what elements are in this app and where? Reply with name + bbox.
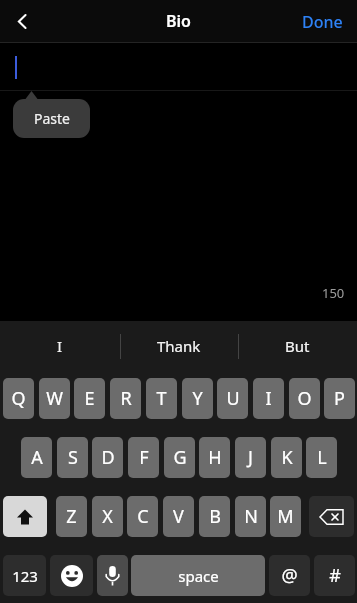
button[interactable]: Done <box>293 5 351 38</box>
button[interactable]: T <box>146 378 177 419</box>
staticText: P <box>334 386 345 411</box>
staticText: Y <box>192 386 203 411</box>
button[interactable]: V <box>163 496 194 537</box>
staticText: B <box>209 504 221 529</box>
staticText: But <box>285 336 310 356</box>
staticText: # <box>329 563 341 588</box>
button[interactable]: C <box>127 496 158 537</box>
staticText: O <box>297 386 312 411</box>
button[interactable]: B <box>199 496 230 537</box>
staticText: M <box>277 504 294 529</box>
staticText: Bio <box>166 10 191 32</box>
button[interactable]: A <box>21 437 52 478</box>
staticText: A <box>31 445 43 470</box>
button[interactable]: S <box>57 437 88 478</box>
button[interactable]: Paste <box>13 99 90 138</box>
staticText: R <box>120 386 132 411</box>
staticText: X <box>102 504 113 529</box>
button[interactable]: I <box>0 321 120 371</box>
button[interactable]: Backspace <box>309 496 354 537</box>
button[interactable]: P <box>324 378 355 419</box>
button[interactable]: K <box>271 437 302 478</box>
staticText: Done <box>302 11 343 33</box>
staticText: Q <box>11 386 26 411</box>
staticText: T <box>156 386 167 411</box>
button[interactable]: H <box>199 437 230 478</box>
button[interactable]: U <box>217 378 248 419</box>
staticText: Thank <box>157 336 201 356</box>
staticText: G <box>173 445 187 470</box>
staticText: I <box>265 386 272 411</box>
staticText: U <box>226 386 240 411</box>
button[interactable]: Shift <box>3 496 47 537</box>
button[interactable]: W <box>39 378 70 419</box>
button[interactable]: # <box>314 555 355 596</box>
staticText: F <box>139 445 149 470</box>
staticText: I <box>57 336 63 356</box>
staticText: 150 <box>322 284 345 302</box>
button[interactable]: O <box>289 378 320 419</box>
button[interactable]: Voice input <box>97 555 128 596</box>
staticText: J <box>248 445 253 470</box>
button[interactable]: space <box>131 555 265 596</box>
staticText: K <box>281 445 293 470</box>
staticText: 123 <box>12 566 38 586</box>
button[interactable]: G <box>164 437 195 478</box>
staticText: Paste <box>34 109 70 128</box>
staticText: Z <box>66 504 77 529</box>
button[interactable]: 150 <box>0 43 357 321</box>
staticText: W <box>46 386 63 411</box>
button[interactable]: F <box>128 437 159 478</box>
staticText: space <box>178 566 219 586</box>
button[interactable]: @ <box>269 555 310 596</box>
button[interactable]: R <box>110 378 141 419</box>
staticText: D <box>101 445 115 470</box>
staticText: E <box>84 386 95 411</box>
button[interactable]: D <box>92 437 123 478</box>
button[interactable]: But <box>238 321 357 371</box>
staticText: H <box>208 445 222 470</box>
staticText: C <box>137 504 149 529</box>
button[interactable]: Q <box>3 378 34 419</box>
button[interactable]: L <box>306 437 337 478</box>
button[interactable]: Emoji <box>50 555 93 596</box>
staticText: @ <box>281 563 298 588</box>
button[interactable]: Thank <box>120 321 238 371</box>
staticText: V <box>173 504 184 529</box>
button[interactable]: I <box>253 378 284 419</box>
button[interactable]: Z <box>56 496 87 537</box>
button[interactable]: X <box>92 496 123 537</box>
button[interactable]: Y <box>182 378 213 419</box>
button[interactable]: Back <box>4 5 40 38</box>
staticText: N <box>244 504 258 529</box>
staticText: L <box>317 445 327 470</box>
button[interactable]: E <box>74 378 105 419</box>
button[interactable]: J <box>235 437 266 478</box>
staticText: S <box>68 445 78 470</box>
button[interactable]: M <box>270 496 301 537</box>
button[interactable]: N <box>235 496 266 537</box>
button[interactable]: 123 <box>3 555 46 596</box>
